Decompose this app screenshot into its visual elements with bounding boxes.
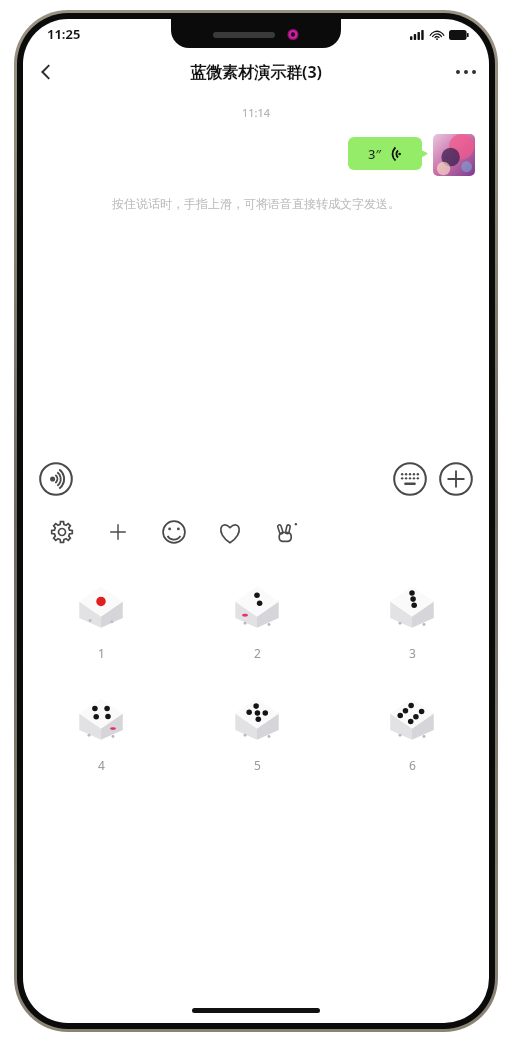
- button[interactable]: 2: [220, 571, 294, 665]
- button[interactable]: Add: [439, 462, 473, 496]
- staticText: 3: [409, 645, 416, 661]
- button[interactable]: Favorites: [213, 515, 247, 549]
- staticText: 4: [98, 757, 105, 773]
- button[interactable]: Voice message, 3 seconds: [348, 137, 428, 170]
- button[interactable]: More options: [443, 49, 489, 95]
- button[interactable]: Keyboard: [393, 462, 427, 496]
- button[interactable]: 6: [375, 683, 449, 777]
- button[interactable]: Add sticker: [101, 515, 135, 549]
- button[interactable]: Emoji: [157, 515, 191, 549]
- button[interactable]: 5: [220, 683, 294, 777]
- button[interactable]: Avatar: [433, 134, 475, 176]
- staticText: 5: [254, 757, 261, 773]
- button[interactable]: Settings: [45, 515, 79, 549]
- staticText: 11:14: [23, 105, 489, 120]
- staticText: 蓝微素材演示群(3): [190, 61, 323, 83]
- button[interactable]: Voice input: [39, 462, 73, 496]
- staticText: 1: [98, 645, 105, 661]
- button[interactable]: Gestures: [269, 515, 303, 549]
- button[interactable]: 4: [64, 683, 138, 777]
- staticText: 6: [409, 757, 416, 773]
- button[interactable]: 1: [64, 571, 138, 665]
- button[interactable]: 3: [375, 571, 449, 665]
- staticText: 3″: [368, 145, 382, 163]
- staticText: 按住说话时，手指上滑，可将语音直接转成文字发送。: [39, 196, 473, 211]
- staticText: 11:25: [47, 25, 81, 43]
- button[interactable]: Back: [23, 49, 69, 95]
- staticText: 2: [254, 645, 261, 661]
